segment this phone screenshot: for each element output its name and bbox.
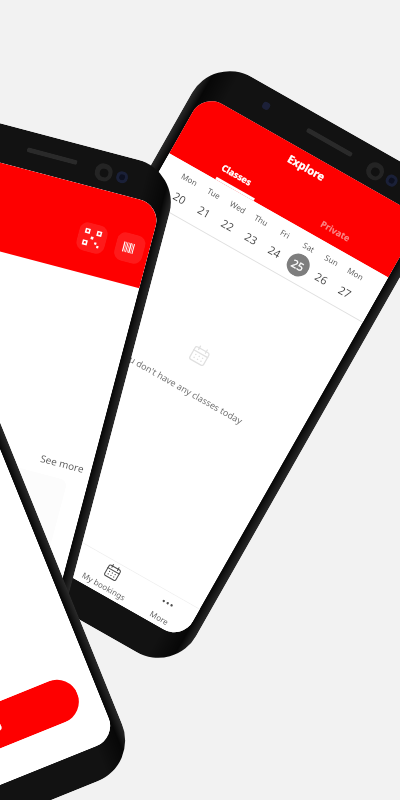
button[interactable]: Mon <box>325 256 373 314</box>
button[interactable]: Private <box>279 189 393 272</box>
staticText: Sat <box>301 239 317 255</box>
staticText: Explore <box>285 151 328 184</box>
button[interactable]: Explore <box>18 516 90 578</box>
button[interactable]: Mon <box>159 161 208 220</box>
staticText: 24 <box>265 242 284 261</box>
button[interactable]: Sat <box>278 229 327 287</box>
button[interactable]: Scan QR code <box>74 220 110 256</box>
button[interactable]: Thu <box>231 202 280 260</box>
staticText: 23 <box>242 229 261 248</box>
staticText: Wed <box>228 198 248 216</box>
button[interactable]: See more <box>39 451 86 476</box>
staticText: Private <box>319 217 353 244</box>
button[interactable]: Classes <box>180 133 293 215</box>
staticText: Mon <box>345 264 367 283</box>
button[interactable]: Scan barcode <box>112 230 147 266</box>
button[interactable]: Sign up <box>0 673 85 793</box>
staticText: My bookings <box>80 569 128 603</box>
button[interactable]: Fri <box>254 216 303 274</box>
staticText: Sign up <box>0 716 5 751</box>
button[interactable]: Tue <box>183 175 233 234</box>
staticText: Tue <box>205 185 223 201</box>
staticText: Mon <box>179 170 200 189</box>
button[interactable]: Home <box>0 485 35 547</box>
staticText: 21 <box>195 202 214 221</box>
button[interactable]: Wed <box>207 189 256 247</box>
staticText: Sun <box>323 252 341 269</box>
button[interactable]: My bookings <box>73 547 145 609</box>
staticText: 22 <box>218 215 237 235</box>
staticText: More <box>148 608 171 627</box>
staticText: Thu <box>252 212 271 229</box>
staticText: 27 <box>336 282 354 301</box>
staticText: Explore <box>34 543 65 567</box>
button[interactable]: More <box>127 579 200 640</box>
staticText: 26 <box>312 269 331 288</box>
staticText: 25 <box>289 255 308 275</box>
button[interactable]: Sun <box>301 242 350 300</box>
staticText: You don't have any classes today <box>118 347 245 426</box>
staticText: Fri <box>278 226 293 241</box>
staticText: 20 <box>171 188 189 208</box>
staticText: Classes <box>220 161 254 188</box>
